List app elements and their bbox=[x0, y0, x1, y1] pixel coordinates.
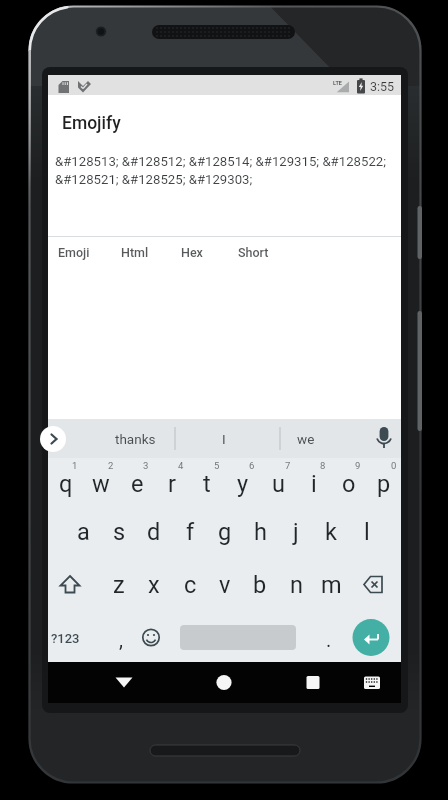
staticText: x bbox=[148, 571, 160, 599]
staticText: . bbox=[326, 628, 332, 651]
button[interactable]: j bbox=[279, 507, 313, 557]
staticText: thanks bbox=[115, 431, 156, 447]
button[interactable]: a bbox=[66, 507, 100, 557]
staticText: we bbox=[297, 431, 315, 447]
button[interactable]: r bbox=[155, 459, 189, 509]
staticText: 3 bbox=[143, 460, 149, 471]
button[interactable]: i bbox=[297, 459, 331, 509]
button[interactable] bbox=[298, 667, 328, 697]
staticText: 9 bbox=[355, 460, 361, 471]
staticText: u bbox=[272, 470, 285, 498]
staticText: 3:55 bbox=[370, 79, 395, 94]
staticText: t bbox=[203, 470, 211, 498]
button[interactable] bbox=[352, 619, 389, 656]
button[interactable]: u bbox=[261, 459, 295, 509]
button[interactable]: e bbox=[120, 459, 154, 509]
staticText: 0 bbox=[391, 460, 397, 471]
button[interactable]: Emoji bbox=[52, 242, 96, 262]
button[interactable]: thanks bbox=[95, 426, 175, 452]
staticText: 5 bbox=[214, 460, 220, 471]
button[interactable] bbox=[53, 567, 87, 603]
button[interactable] bbox=[40, 426, 66, 452]
staticText: g bbox=[218, 518, 232, 546]
button[interactable] bbox=[370, 424, 398, 454]
button[interactable]: k bbox=[314, 507, 348, 557]
button[interactable]: f bbox=[173, 507, 207, 557]
button[interactable]: c bbox=[173, 560, 207, 610]
staticText: Html bbox=[121, 245, 149, 260]
button[interactable] bbox=[355, 567, 391, 603]
staticText: j bbox=[293, 518, 299, 546]
button[interactable]: l bbox=[350, 507, 384, 557]
staticText: f bbox=[186, 518, 195, 546]
button[interactable]: s bbox=[102, 507, 136, 557]
button[interactable]: d bbox=[137, 507, 171, 557]
button[interactable]: Html bbox=[115, 242, 155, 262]
staticText: Hex bbox=[181, 245, 203, 260]
staticText: w bbox=[92, 470, 110, 498]
button[interactable]: v bbox=[208, 560, 242, 610]
button[interactable] bbox=[358, 667, 386, 697]
staticText: i bbox=[311, 470, 317, 498]
button[interactable]: Short bbox=[233, 242, 273, 262]
staticText: k bbox=[325, 518, 337, 546]
staticText: 4 bbox=[178, 460, 184, 471]
staticText: a bbox=[77, 518, 90, 546]
button[interactable]: we bbox=[276, 426, 336, 452]
button[interactable] bbox=[142, 628, 160, 646]
button[interactable]: n bbox=[279, 560, 313, 610]
staticText: 1 bbox=[72, 460, 78, 471]
button[interactable]: y bbox=[226, 459, 260, 509]
staticText: q bbox=[59, 470, 73, 498]
button[interactable]: x bbox=[137, 560, 171, 610]
staticText: 8 bbox=[320, 460, 326, 471]
button[interactable]: t bbox=[190, 459, 224, 509]
staticText: v bbox=[219, 571, 231, 599]
button[interactable]: b bbox=[243, 560, 277, 610]
staticText: e bbox=[131, 470, 144, 498]
staticText: &#128521; &#128525; &#129303; bbox=[55, 172, 253, 187]
staticText: &#128513; &#128512; &#128514; &#129315; … bbox=[55, 154, 386, 169]
staticText: d bbox=[147, 518, 161, 546]
button[interactable]: w bbox=[84, 459, 118, 509]
button[interactable] bbox=[109, 667, 139, 697]
staticText: h bbox=[254, 518, 267, 546]
button[interactable]: m bbox=[314, 560, 348, 610]
staticText: , bbox=[119, 628, 123, 651]
button[interactable]: z bbox=[102, 560, 136, 610]
staticText: o bbox=[342, 470, 356, 498]
button[interactable]: ?123 bbox=[48, 623, 82, 653]
button[interactable] bbox=[209, 667, 239, 697]
staticText: Emoji bbox=[58, 245, 90, 260]
staticText: y bbox=[237, 470, 249, 498]
staticText: n bbox=[290, 571, 303, 599]
staticText: c bbox=[184, 571, 197, 599]
button[interactable]: p bbox=[367, 459, 401, 509]
button[interactable]: . bbox=[319, 624, 339, 654]
button[interactable]: o bbox=[332, 459, 366, 509]
staticText: r bbox=[168, 470, 176, 498]
button[interactable]: h bbox=[243, 507, 277, 557]
staticText: b bbox=[253, 571, 267, 599]
staticText: LTE bbox=[333, 80, 342, 86]
staticText: m bbox=[321, 571, 342, 599]
staticText: ?123 bbox=[51, 631, 80, 646]
button[interactable]: g bbox=[208, 507, 242, 557]
staticText: Short bbox=[238, 245, 269, 260]
button[interactable]: Hex bbox=[174, 242, 210, 262]
button[interactable]: I bbox=[194, 426, 254, 452]
staticText: I bbox=[222, 431, 226, 447]
staticText: 6 bbox=[249, 460, 255, 471]
staticText: p bbox=[377, 470, 391, 498]
staticText: Emojify bbox=[62, 113, 121, 134]
button[interactable]: q bbox=[49, 459, 83, 509]
staticText: l bbox=[364, 518, 370, 546]
staticText: s bbox=[113, 518, 126, 546]
button[interactable]: , bbox=[111, 624, 131, 654]
staticText: 7 bbox=[285, 460, 291, 471]
staticText: 2 bbox=[108, 460, 114, 471]
staticText: z bbox=[113, 571, 125, 599]
